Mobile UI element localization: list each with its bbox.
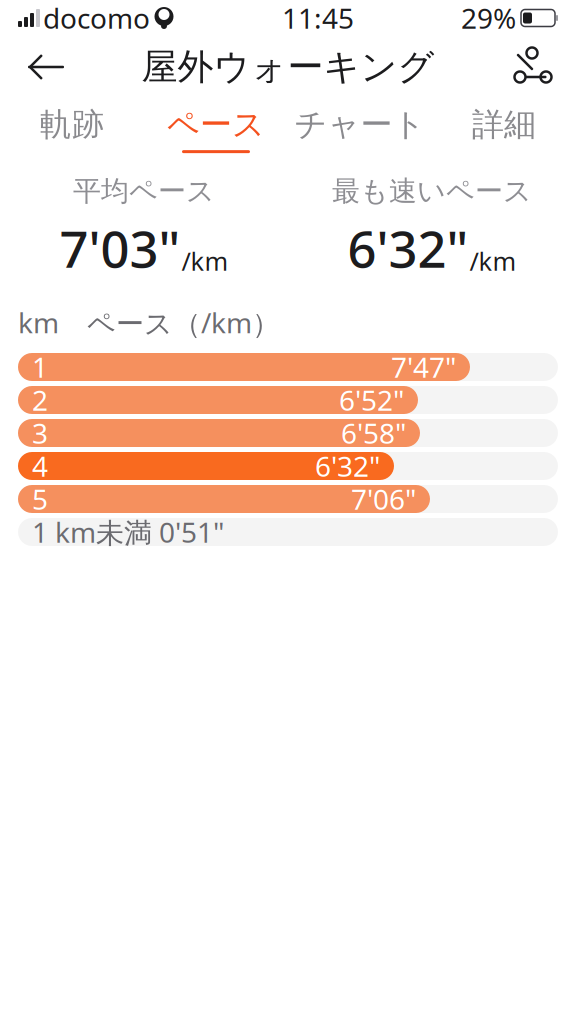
staticText: 屋外ウォーキング [141,45,434,89]
button[interactable]: 詳細 [432,98,576,160]
staticText: 6'32" [315,447,380,485]
staticText: 軌跡 [40,105,104,144]
button[interactable]: 戻る [14,39,78,95]
staticText: 5 [32,480,48,518]
button[interactable]: 共有 [498,39,562,95]
staticText: 4 [32,447,48,485]
staticText: 詳細 [472,105,536,144]
staticText: 11:45 [282,0,354,37]
staticText: 1 km未満 0'51" [32,513,224,551]
staticText: 最も速いペース [332,174,532,208]
button[interactable]: 軌跡 [0,98,144,160]
staticText: 7'47" [391,348,456,386]
staticText: 3 [32,414,48,452]
staticText: docomo [43,0,150,37]
staticText: 7'03" [59,214,180,282]
staticText: /km [469,244,516,278]
staticText: 6'58" [341,414,406,452]
button[interactable]: チャート [288,98,432,160]
staticText: 6'52" [339,381,404,419]
staticText: チャート [294,105,425,144]
staticText: /km [181,244,228,278]
staticText: ペース [167,105,265,144]
staticText: 平均ペース [73,174,215,208]
staticText: 1 [32,348,48,386]
staticText: 29% [461,0,516,37]
button[interactable]: ペース [144,98,288,160]
staticText: 7'06" [351,480,416,518]
staticText: 2 [32,381,48,419]
staticText: km ペース（/km） [18,304,280,341]
staticText: 6'32" [347,214,468,282]
